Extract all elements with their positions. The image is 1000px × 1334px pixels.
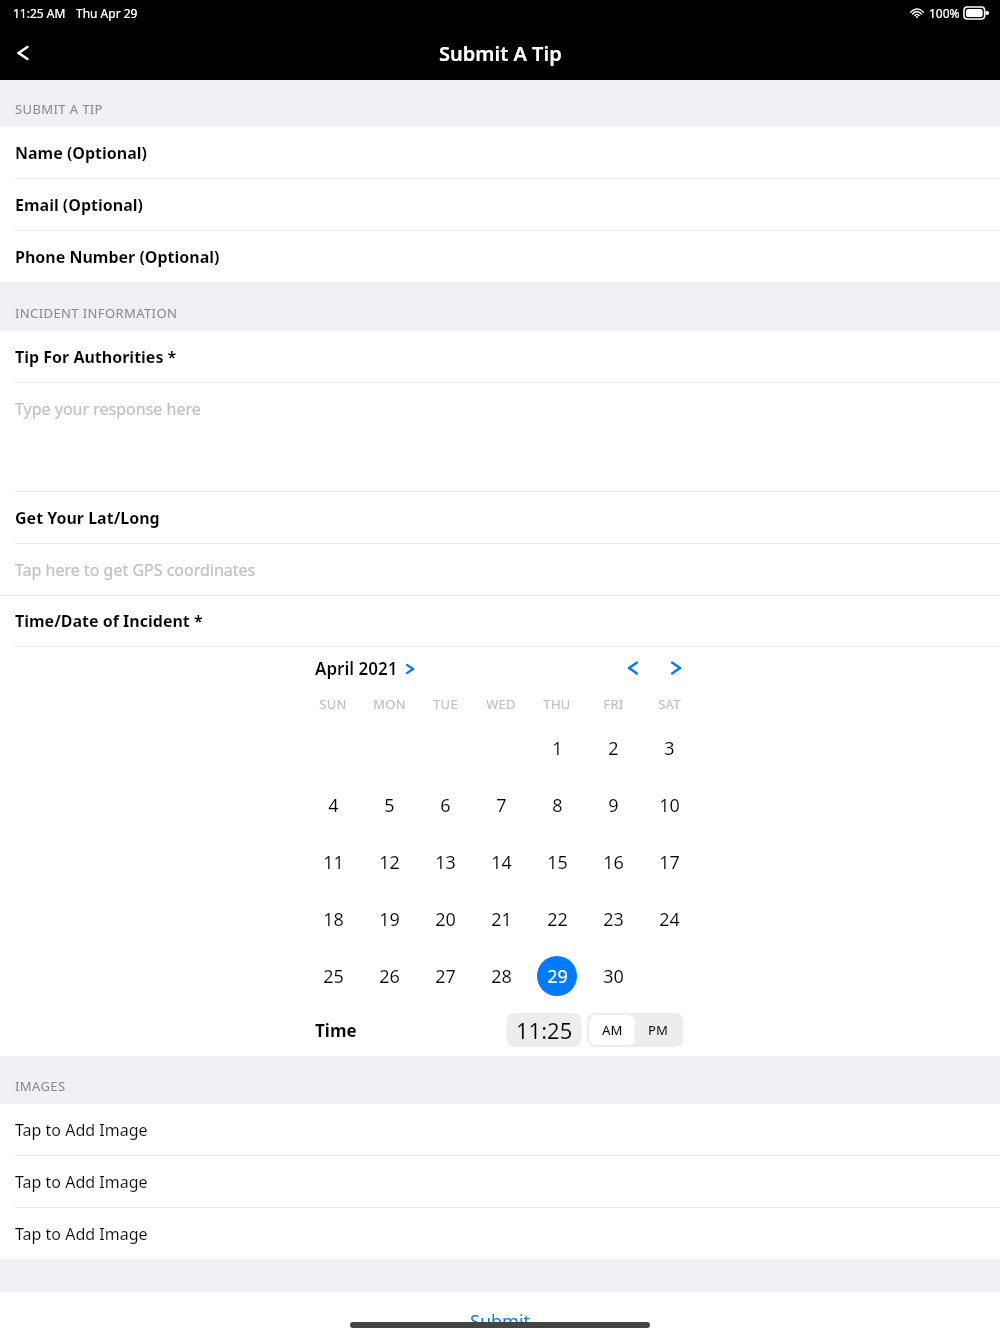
button[interactable]: 10 xyxy=(641,783,697,827)
button[interactable]: April 2021 xyxy=(315,657,417,680)
button[interactable]: 14 xyxy=(473,840,529,884)
button[interactable]: 7 xyxy=(473,783,529,827)
button[interactable]: 11:25 xyxy=(507,1013,581,1047)
button[interactable]: 11 xyxy=(305,840,361,884)
staticText: Tap to Add Image xyxy=(15,1223,148,1245)
staticText: MON xyxy=(373,695,406,713)
staticText: 23 xyxy=(603,907,624,932)
button[interactable]: 26 xyxy=(361,954,417,998)
staticText: 6 xyxy=(440,793,451,818)
button[interactable]: 15 xyxy=(529,840,585,884)
button[interactable]: Next month xyxy=(656,648,696,688)
button[interactable]: Phone Number (Optional) xyxy=(0,231,1000,282)
button[interactable]: 21 xyxy=(473,897,529,941)
staticText: 15 xyxy=(547,850,568,875)
button[interactable]: 8 xyxy=(529,783,585,827)
staticText: 2 xyxy=(608,736,619,761)
staticText: Tap here to get GPS coordinates xyxy=(15,559,256,581)
staticText: Tap to Add Image xyxy=(15,1119,148,1141)
staticText: 17 xyxy=(659,850,680,875)
button[interactable]: Name (Optional) xyxy=(0,127,1000,178)
button[interactable]: 30 xyxy=(585,954,641,998)
button[interactable]: Type your response here xyxy=(0,383,1000,491)
staticText: SAT xyxy=(658,695,681,713)
staticText: April 2021 xyxy=(315,657,398,680)
staticText: TUE xyxy=(433,695,458,713)
button[interactable]: 27 xyxy=(417,954,473,998)
button[interactable]: Previous month xyxy=(613,648,653,688)
button[interactable]: 23 xyxy=(585,897,641,941)
button[interactable]: 5 xyxy=(361,783,417,827)
button[interactable]: Back xyxy=(0,30,46,76)
staticText: 26 xyxy=(379,964,400,989)
staticText: 5 xyxy=(384,793,395,818)
button[interactable]: 2 xyxy=(585,726,641,770)
staticText: IMAGES xyxy=(15,1077,66,1095)
button[interactable]: 24 xyxy=(641,897,697,941)
button[interactable]: 29 xyxy=(529,954,585,998)
button[interactable]: 28 xyxy=(473,954,529,998)
button[interactable]: 4 xyxy=(305,783,361,827)
staticText: Submit xyxy=(470,1309,531,1334)
button[interactable]: 19 xyxy=(361,897,417,941)
button[interactable]: Tap to Add Image xyxy=(0,1104,1000,1155)
staticText: 8 xyxy=(552,793,563,818)
button[interactable]: Tip For Authorities * xyxy=(0,331,1000,382)
staticText: 16 xyxy=(603,850,624,875)
button[interactable]: 18 xyxy=(305,897,361,941)
staticText: 19 xyxy=(379,907,400,932)
staticText: 22 xyxy=(547,907,568,932)
staticText: INCIDENT INFORMATION xyxy=(15,304,178,322)
button[interactable]: Tap to Add Image xyxy=(0,1156,1000,1207)
button[interactable]: 17 xyxy=(641,840,697,884)
staticText: Tap to Add Image xyxy=(15,1171,148,1193)
button[interactable]: 20 xyxy=(417,897,473,941)
button[interactable]: 3 xyxy=(641,726,697,770)
staticText: 29 xyxy=(547,964,568,989)
staticText: 11:25 xyxy=(516,1015,573,1045)
button[interactable]: AM xyxy=(589,1015,635,1045)
button[interactable]: PM xyxy=(635,1015,681,1045)
button[interactable]: 12 xyxy=(361,840,417,884)
staticText: Tip For Authorities * xyxy=(15,346,177,368)
button[interactable]: Get Your Lat/Long xyxy=(0,492,1000,543)
staticText: 25 xyxy=(323,964,344,989)
button[interactable]: 1 xyxy=(529,726,585,770)
staticText: 27 xyxy=(435,964,456,989)
staticText: 3 xyxy=(664,736,675,761)
staticText: 20 xyxy=(435,907,456,932)
staticText: 12 xyxy=(379,850,400,875)
staticText: 14 xyxy=(491,850,512,875)
staticText: Name (Optional) xyxy=(15,142,148,164)
staticText: 30 xyxy=(603,964,624,989)
staticText: Time xyxy=(315,1019,357,1042)
staticText: 9 xyxy=(608,793,619,818)
button[interactable]: Tap here to get GPS coordinates xyxy=(0,544,1000,595)
button[interactable]: 13 xyxy=(417,840,473,884)
staticText: Email (Optional) xyxy=(15,194,143,216)
staticText: SUN xyxy=(319,695,347,713)
staticText: FRI xyxy=(603,695,624,713)
staticText: Time/Date of Incident * xyxy=(15,610,203,632)
staticText: Get Your Lat/Long xyxy=(15,507,160,529)
staticText: 10 xyxy=(659,793,680,818)
staticText: 18 xyxy=(323,907,344,932)
button[interactable]: 9 xyxy=(585,783,641,827)
staticText: WED xyxy=(486,695,516,713)
staticText: 28 xyxy=(491,964,512,989)
button[interactable]: 16 xyxy=(585,840,641,884)
staticText: 1 xyxy=(552,736,563,761)
button[interactable]: Tap to Add Image xyxy=(0,1208,1000,1259)
button[interactable]: Time/Date of Incident * xyxy=(0,596,1000,646)
staticText: 11:25 AM xyxy=(13,5,66,21)
staticText: 100% xyxy=(929,5,960,21)
staticText: Phone Number (Optional) xyxy=(15,246,220,268)
button[interactable]: 25 xyxy=(305,954,361,998)
staticText: SUBMIT A TIP xyxy=(15,100,103,118)
button[interactable]: 6 xyxy=(417,783,473,827)
button[interactable]: Submit xyxy=(0,1292,1000,1334)
button[interactable]: 22 xyxy=(529,897,585,941)
staticText: Submit A Tip xyxy=(439,40,562,67)
staticText: 24 xyxy=(659,907,680,932)
button[interactable]: Email (Optional) xyxy=(0,179,1000,230)
